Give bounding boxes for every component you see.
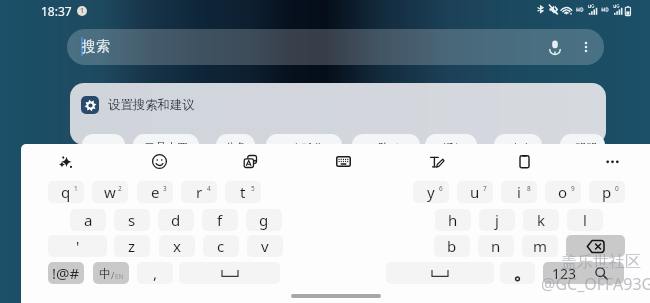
button[interactable]: t [225,181,261,203]
button[interactable]: ' [48,235,107,257]
button[interactable]: Clipboard [512,149,536,173]
staticText: #全球化 [284,140,325,155]
staticText: 18:37 [41,3,72,19]
button[interactable]: More options [576,37,596,57]
staticText: 5 [251,184,255,193]
staticText: o [558,182,568,202]
button[interactable]: hi [82,134,125,156]
staticText: 1 [74,184,78,193]
button[interactable]: Stickers [238,149,262,173]
button[interactable]: l [567,209,603,231]
staticText: t [240,182,246,202]
button[interactable]: b [434,235,470,257]
button[interactable]: Numbers and search [543,262,624,284]
button[interactable]: AI assist [54,149,78,173]
button[interactable]: f [202,209,238,231]
staticText: @GC_OFFA93G [541,273,650,295]
staticText: 0 [615,184,619,193]
button[interactable]: !@# [48,262,84,284]
staticText: 公鱼 [225,140,247,154]
staticText: #明明 [568,140,598,155]
button[interactable]: #明明 [560,134,605,156]
button[interactable]: y [413,181,449,203]
button[interactable]: Space [386,262,494,284]
staticText: n [491,236,501,256]
button[interactable]: #防引 [352,134,420,156]
button[interactable]: a [70,209,106,231]
staticText: x [173,236,181,256]
button[interactable]: v [247,235,283,257]
staticText: c [217,236,225,256]
button[interactable]: Key [500,262,535,284]
staticText: !@# [52,263,80,283]
staticText: 中 [99,266,111,281]
staticText: 4 [207,184,211,193]
button[interactable]: 公鱼 [216,134,255,156]
staticText: #防引 [371,140,401,155]
button[interactable]: n [478,235,514,257]
staticText: 123 [552,264,577,283]
button[interactable]: More [600,149,624,173]
button[interactable]: z [114,235,150,257]
staticText: v [261,236,269,256]
button[interactable]: m [522,235,558,257]
button[interactable]: Handwriting [424,149,448,173]
button[interactable]: Emoji [147,149,171,173]
button[interactable]: o [545,181,581,203]
staticText: 9 [571,184,575,193]
staticText: z [128,236,136,256]
staticText: i [517,182,521,202]
staticText: 盖乐世社区 [561,252,641,272]
button[interactable]: e [137,181,173,203]
button[interactable]: r [181,181,217,203]
button[interactable]: #通知 [425,134,477,156]
staticText: 8 [527,184,531,193]
button[interactable]: j [479,209,515,231]
staticText: 设置搜索和建议 [108,97,195,113]
button[interactable]: 二月十四 [133,134,199,156]
staticText: a [84,210,93,230]
staticText: d [171,210,181,230]
button[interactable]: #全球化 [266,134,342,156]
button[interactable]: d [158,209,194,231]
staticText: b [447,236,457,256]
button[interactable]: k [523,209,559,231]
button[interactable]: Voice search [545,37,565,57]
button[interactable]: p [589,181,625,203]
staticText: h [448,210,458,230]
button[interactable]: x [159,235,195,257]
staticText: r [196,182,203,202]
staticText: / [111,269,115,281]
staticText: 1 [80,6,85,16]
staticText: q [61,182,71,202]
button[interactable]: Space [179,262,280,284]
button[interactable]: 中 [93,262,129,284]
staticText: 搜索 [82,38,110,56]
staticText: ' [76,236,80,256]
button[interactable]: c [203,235,239,257]
button[interactable]: i [501,181,537,203]
staticText: u [470,182,480,202]
button[interactable]: , [137,262,173,284]
button[interactable]: h [435,209,471,231]
button[interactable]: w [92,181,128,203]
staticText: k [537,210,546,230]
staticText: 6 [439,184,443,193]
staticText: 2 [118,184,122,193]
button[interactable]: 设置搜索和建议 [81,96,195,114]
button[interactable]: 搜索 [67,29,604,65]
staticText: p [602,182,612,202]
button[interactable]: u [457,181,493,203]
button[interactable]: g [246,209,282,231]
button[interactable]: s [114,209,150,231]
button[interactable]: Keyboard layout [331,149,355,173]
staticText: w [104,182,116,202]
button[interactable]: Backspace [566,235,625,257]
staticText: g [259,210,269,230]
staticText: f [217,210,223,230]
button[interactable]: #内会 [494,134,542,156]
staticText: 3 [163,184,167,193]
button[interactable]: q [48,181,84,203]
staticText: #通知 [436,140,466,155]
staticText: m [533,236,548,256]
